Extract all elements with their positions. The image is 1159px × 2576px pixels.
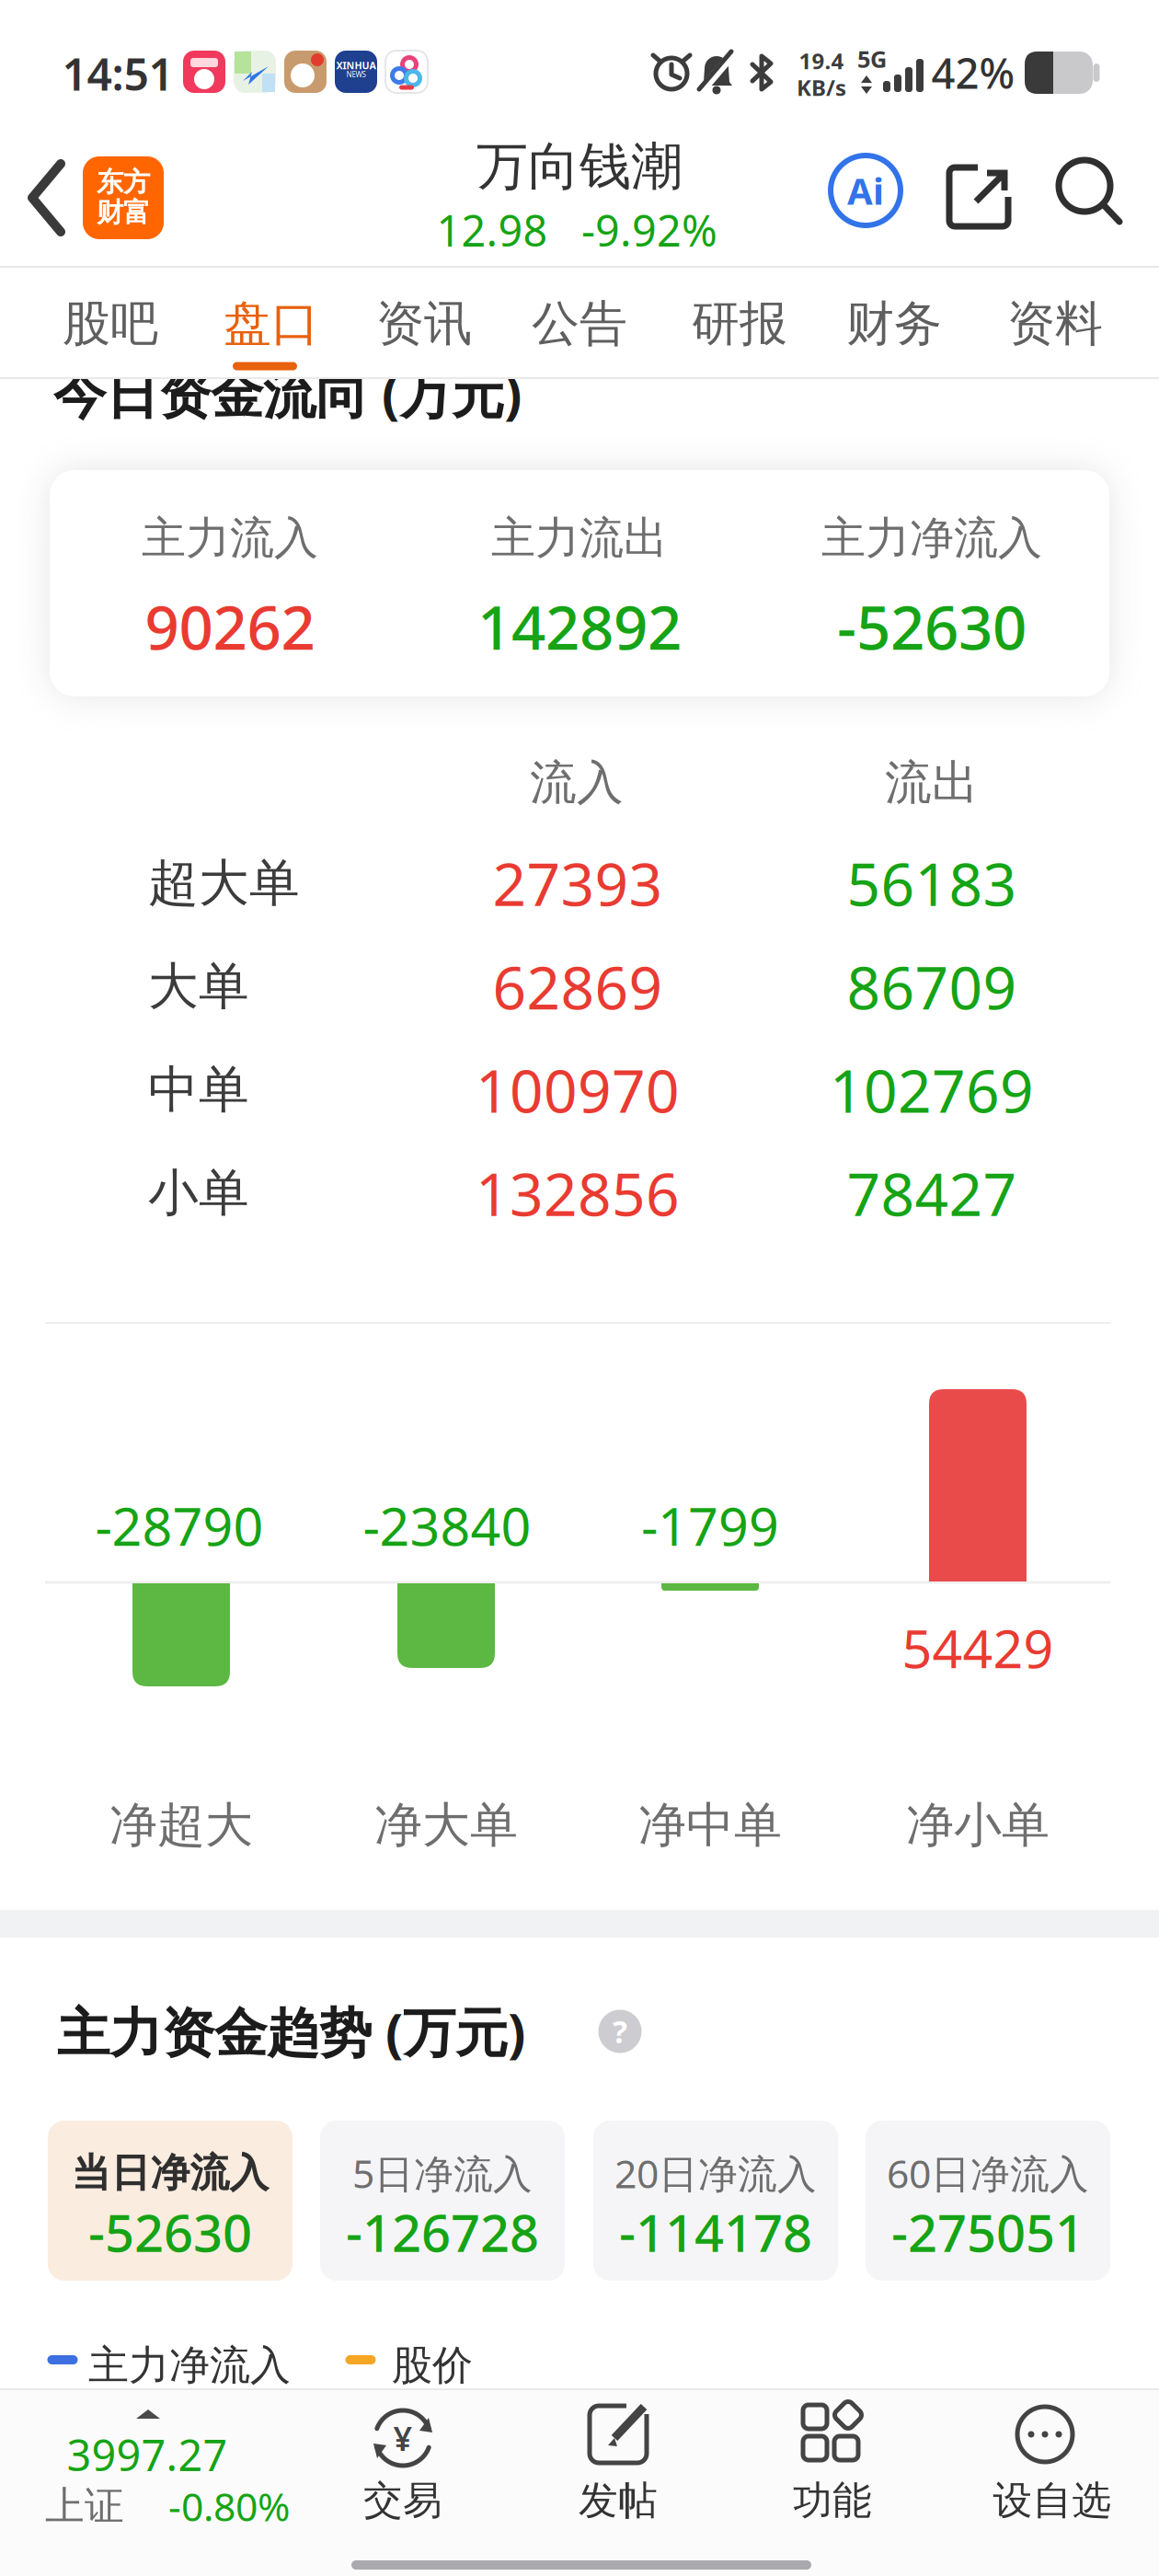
button[interactable]: 股吧 bbox=[41, 278, 179, 370]
staticText: -126728 bbox=[346, 2198, 539, 2266]
staticText: 研报 bbox=[692, 294, 787, 353]
staticText: 小单 bbox=[148, 1162, 249, 1224]
staticText: XINHUA bbox=[336, 59, 376, 72]
staticText: -1799 bbox=[641, 1490, 779, 1560]
staticText: Ai bbox=[847, 166, 884, 215]
button[interactable]: 研报 bbox=[671, 278, 809, 370]
button[interactable]: 公告 bbox=[511, 278, 648, 370]
staticText: 公告 bbox=[532, 294, 627, 353]
staticText: 东方 bbox=[97, 166, 150, 199]
button[interactable]: 财务 bbox=[825, 278, 963, 370]
button[interactable]: 5日净流入 bbox=[320, 2121, 565, 2281]
staticText: 流入 bbox=[530, 754, 624, 812]
staticText: KB/s bbox=[797, 73, 846, 102]
staticText: 大单 bbox=[148, 956, 249, 1017]
staticText: 资讯 bbox=[376, 294, 472, 353]
staticText: -9.92% bbox=[581, 201, 717, 259]
staticText: 60日净流入 bbox=[887, 2147, 1089, 2199]
staticText: 62869 bbox=[493, 947, 663, 1026]
staticText: 功能 bbox=[793, 2476, 872, 2525]
staticText: 净超大 bbox=[109, 1796, 253, 1855]
staticText: 主力流入 bbox=[142, 511, 318, 565]
staticText: 超大单 bbox=[148, 852, 300, 914]
staticText: -114178 bbox=[619, 2198, 812, 2266]
button[interactable]: 交易 bbox=[320, 2387, 486, 2562]
button[interactable]: 资讯 bbox=[355, 278, 493, 370]
staticText: 万向钱潮 bbox=[476, 135, 683, 198]
staticText: -0.80% bbox=[168, 2480, 290, 2532]
staticText: -23840 bbox=[363, 1490, 531, 1560]
staticText: 发帖 bbox=[579, 2476, 658, 2525]
staticText: 132856 bbox=[476, 1154, 680, 1232]
staticText: 27393 bbox=[493, 844, 663, 922]
staticText: 净大单 bbox=[374, 1796, 518, 1855]
staticText: 当日净流入 bbox=[71, 2149, 269, 2197]
button[interactable]: 东方财富 bbox=[83, 156, 164, 239]
staticText: 14:51 bbox=[62, 44, 173, 103]
staticText: 90262 bbox=[145, 587, 315, 666]
button[interactable]: 分享 bbox=[946, 156, 1016, 234]
staticText: 今日资金流向 (万元) bbox=[53, 358, 522, 428]
button[interactable]: 返回 bbox=[18, 158, 92, 237]
staticText: 股价 bbox=[392, 2340, 473, 2390]
staticText: 净小单 bbox=[906, 1796, 1050, 1855]
button[interactable]: 发帖 bbox=[535, 2387, 701, 2562]
staticText: 12.98 bbox=[436, 201, 548, 259]
staticText: -275051 bbox=[891, 2198, 1084, 2266]
staticText: 102769 bbox=[830, 1051, 1034, 1129]
staticText: -52630 bbox=[837, 587, 1027, 666]
staticText: 142892 bbox=[477, 587, 682, 666]
button[interactable]: 功能 bbox=[750, 2387, 915, 2562]
button[interactable]: 60日净流入 bbox=[866, 2121, 1110, 2281]
staticText: -52630 bbox=[88, 2198, 252, 2266]
button[interactable]: AI助手 bbox=[831, 155, 901, 225]
staticText: 交易 bbox=[363, 2476, 442, 2525]
button[interactable]: 20日净流入 bbox=[593, 2121, 838, 2281]
staticText: 3997.27 bbox=[67, 2426, 228, 2483]
staticText: 42% bbox=[931, 45, 1015, 100]
staticText: 盘口 bbox=[224, 294, 319, 353]
staticText: NEWS bbox=[346, 70, 366, 79]
staticText: 主力净流入 bbox=[821, 511, 1042, 565]
staticText: 86709 bbox=[847, 947, 1017, 1026]
staticText: 56183 bbox=[847, 844, 1017, 922]
button[interactable]: 当日净流入 bbox=[48, 2121, 293, 2281]
staticText: 19.4 bbox=[799, 46, 844, 75]
staticText: ? bbox=[613, 2011, 627, 2052]
staticText: 主力资金趋势 (万元) bbox=[57, 1996, 525, 2066]
button[interactable]: 设自选 bbox=[970, 2387, 1135, 2562]
button[interactable]: 盘口 bbox=[202, 278, 340, 370]
button[interactable]: 资料 bbox=[986, 278, 1124, 370]
staticText: 54429 bbox=[902, 1613, 1054, 1683]
staticText: 100970 bbox=[476, 1051, 680, 1129]
staticText: 设自选 bbox=[993, 2476, 1112, 2525]
button[interactable]: 搜索 bbox=[1055, 156, 1125, 226]
staticText: 中单 bbox=[148, 1059, 249, 1121]
staticText: 5G bbox=[857, 43, 887, 74]
staticText: 上证 bbox=[45, 2482, 124, 2530]
button[interactable]: 上证指数 bbox=[12, 2393, 316, 2568]
staticText: 5日净流入 bbox=[352, 2147, 533, 2199]
staticText: 主力净流入 bbox=[88, 2340, 291, 2390]
staticText: 净中单 bbox=[638, 1796, 782, 1855]
staticText: 股吧 bbox=[63, 294, 158, 353]
staticText: 78427 bbox=[847, 1154, 1017, 1232]
staticText: 主力流出 bbox=[491, 511, 668, 565]
staticText: ¥ bbox=[393, 2416, 413, 2460]
staticText: -28790 bbox=[95, 1490, 264, 1560]
staticText: 20日净流入 bbox=[614, 2147, 817, 2199]
staticText: 财务 bbox=[846, 294, 942, 353]
staticText: 流出 bbox=[885, 754, 979, 812]
staticText: 资料 bbox=[1007, 294, 1103, 353]
staticText: 财富 bbox=[97, 196, 150, 229]
button[interactable]: 帮助 bbox=[598, 2010, 642, 2053]
